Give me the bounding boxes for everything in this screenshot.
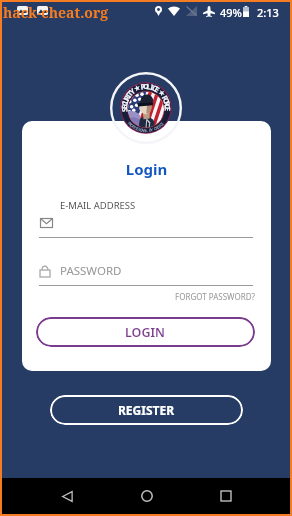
staticText: E-MAIL ADDRESS: [60, 199, 136, 212]
button[interactable]: LOGIN: [36, 317, 255, 347]
button[interactable]: Home: [127, 478, 167, 514]
staticText: 2:13: [257, 5, 279, 20]
staticText: REGISTER: [118, 402, 175, 418]
staticText: LOGIN: [125, 324, 166, 341]
button[interactable]: REGISTER: [50, 395, 243, 425]
staticText: hack-cheat.org: [3, 3, 109, 22]
button[interactable]: Recent apps: [206, 478, 246, 514]
staticText: 49%: [220, 5, 242, 20]
staticText: PASSWORD: [60, 263, 122, 279]
staticText: Login: [22, 159, 271, 179]
button[interactable]: FORGOT PASSWORD?: [39, 291, 255, 302]
button[interactable]: Back: [47, 478, 87, 514]
